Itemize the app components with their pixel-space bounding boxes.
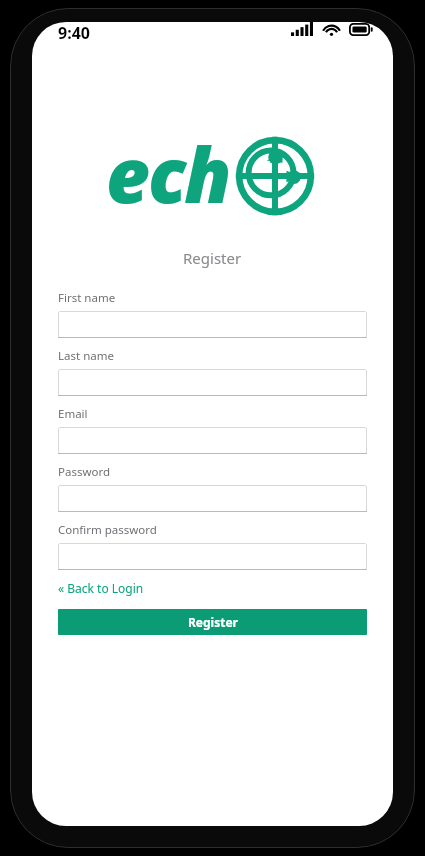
button[interactable]: « Back to Login [58, 578, 144, 598]
button[interactable] [58, 427, 367, 454]
button[interactable] [58, 485, 367, 512]
button[interactable] [58, 311, 367, 338]
staticText: 9:40 [58, 22, 90, 44]
button[interactable]: Register [58, 609, 367, 635]
staticText: Last name [58, 348, 114, 364]
button[interactable] [58, 369, 367, 396]
staticText: « Back to Login [58, 580, 144, 596]
staticText: Register [183, 248, 242, 268]
other: Echo logo [231, 132, 319, 220]
staticText: Register [188, 614, 238, 630]
button[interactable] [58, 543, 367, 570]
staticText: Email [58, 406, 88, 422]
staticText: Confirm password [58, 522, 157, 538]
staticText: First name [58, 290, 116, 306]
staticText: Password [58, 464, 111, 480]
staticText: ech [106, 122, 230, 226]
